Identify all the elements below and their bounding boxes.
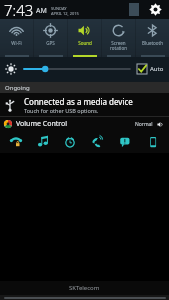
button[interactable]: Bluetooth (136, 19, 169, 57)
staticText: 7:43 (4, 0, 34, 19)
button[interactable]: Sound (68, 19, 101, 57)
button[interactable]: Call volume (83, 131, 111, 153)
staticText: Bluetooth (142, 40, 163, 46)
button[interactable]: Settings (145, 0, 165, 19)
button[interactable]: GPS (34, 19, 67, 57)
button[interactable]: Auto brightness (137, 64, 164, 74)
button[interactable]: Close notification panel (0, 295, 169, 300)
button[interactable]: Media volume (29, 131, 56, 153)
staticText: SKTelecom (69, 284, 100, 292)
staticText: Normal (135, 121, 153, 128)
button[interactable]: Volume Control (0, 117, 169, 153)
staticText: Wi-Fi (11, 40, 22, 46)
staticText: SUNDAY (51, 6, 67, 11)
staticText: Sound (78, 40, 92, 46)
button[interactable]: Connected as a media device (0, 93, 169, 117)
staticText: Screen rotation (110, 40, 127, 52)
staticText: Connected as a media device (24, 96, 133, 107)
button[interactable]: Alarm volume (56, 131, 83, 153)
staticText: Touch for other USB options. (24, 107, 99, 114)
button[interactable]: Screen rotation (102, 19, 135, 57)
staticText: AM (36, 6, 47, 16)
button[interactable]: Notification volume (111, 131, 139, 153)
other: Brightness (5, 63, 17, 75)
staticText: APRIL 12, 2015 (51, 11, 79, 16)
staticText: GPS (46, 40, 55, 46)
button[interactable]: System volume (139, 131, 167, 153)
staticText: Ongoing (5, 84, 30, 92)
staticText: Volume Control (16, 119, 68, 129)
button[interactable] (24, 62, 130, 76)
button[interactable]: Ringtone volume (2, 131, 29, 153)
button[interactable]: Wi-Fi (0, 19, 33, 57)
staticText: Auto (150, 65, 164, 73)
other: Auto brightness (137, 64, 147, 74)
